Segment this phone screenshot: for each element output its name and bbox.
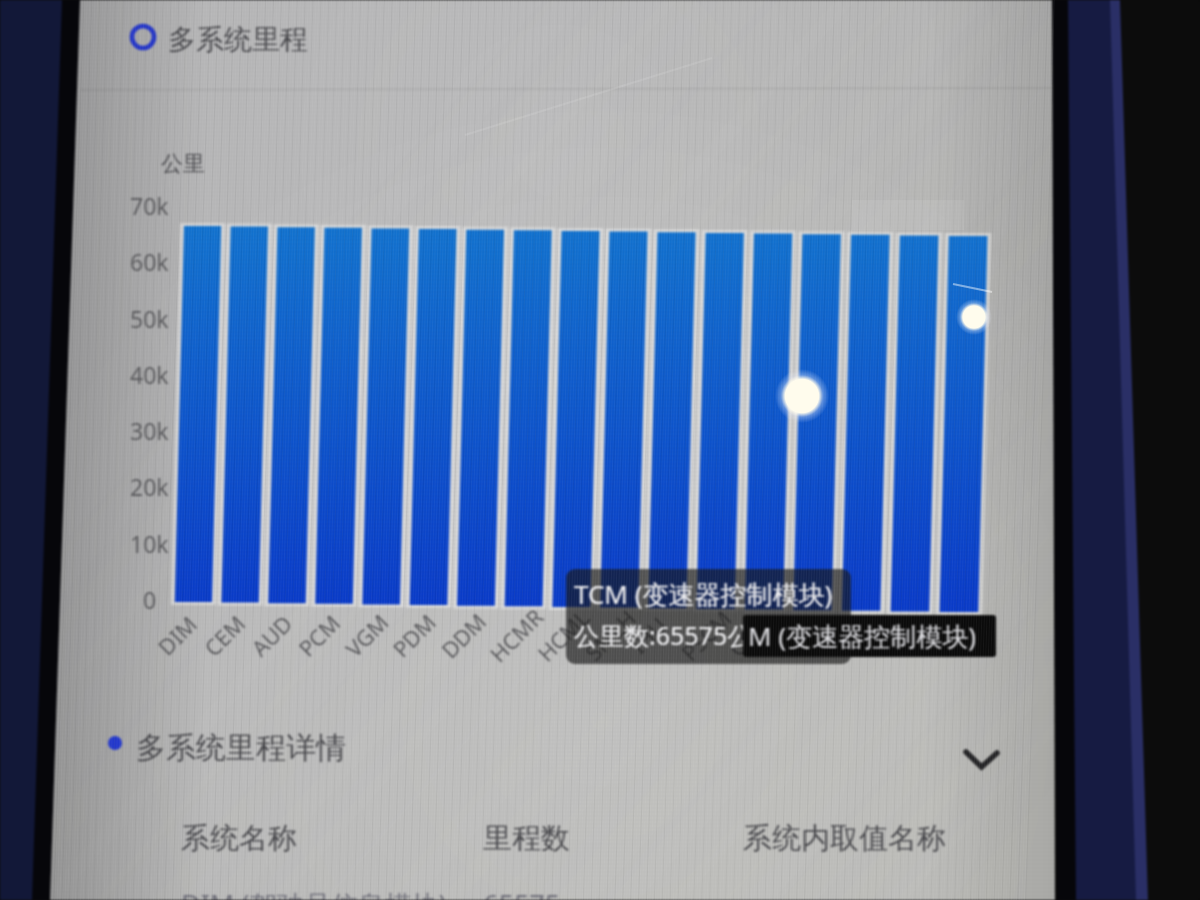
staticText: BCM — [916, 607, 971, 663]
staticText: 系统内取值名称 — [743, 820, 946, 857]
staticText: SMLH — [578, 603, 642, 667]
button[interactable]: Section marker — [126, 12, 326, 62]
staticText: AUD — [244, 608, 299, 662]
staticText: SAS — [768, 611, 817, 659]
staticText: 多系统里程 — [168, 22, 308, 57]
staticText: 40k — [130, 359, 169, 390]
staticText: HCML — [530, 602, 596, 668]
staticText: DIM — [151, 609, 203, 661]
staticText: CCM — [721, 607, 777, 663]
staticText: 多系统里程详情 — [136, 729, 346, 767]
staticText: 10k — [130, 528, 169, 559]
staticText: M (变速器控制模块) — [748, 618, 976, 654]
staticText: IHU — [623, 610, 673, 660]
staticText: DIM (驾驶员信息模块) — [181, 886, 447, 900]
other: Section marker — [126, 20, 160, 54]
staticText: 20k — [130, 471, 169, 502]
staticText: ECM — [866, 608, 921, 662]
staticText: 公里 — [161, 150, 205, 178]
staticText: 70k — [130, 190, 169, 221]
staticText: PDM — [386, 607, 442, 663]
staticText: TCM (变速器控制模块) — [574, 576, 833, 612]
staticText: 里程数 — [483, 820, 570, 857]
staticText: DDM — [434, 606, 493, 664]
button[interactable]: 多系统里程详情 — [100, 722, 440, 772]
staticText: PCM — [291, 607, 347, 663]
staticText: VGM — [339, 607, 394, 663]
staticText: 系统名称 — [181, 820, 297, 857]
staticText: 30k — [130, 415, 169, 446]
staticText: 公里数:65575公里 — [574, 618, 778, 652]
staticText: CEM — [197, 608, 252, 662]
staticText: HCMR — [483, 602, 549, 668]
staticText: 50k — [130, 303, 169, 334]
staticText: 0 — [143, 584, 157, 615]
staticText: 65575 — [483, 886, 561, 900]
staticText: 60k — [130, 246, 169, 277]
staticText: PSCM — [674, 603, 738, 667]
staticText: RSM — [818, 608, 872, 662]
